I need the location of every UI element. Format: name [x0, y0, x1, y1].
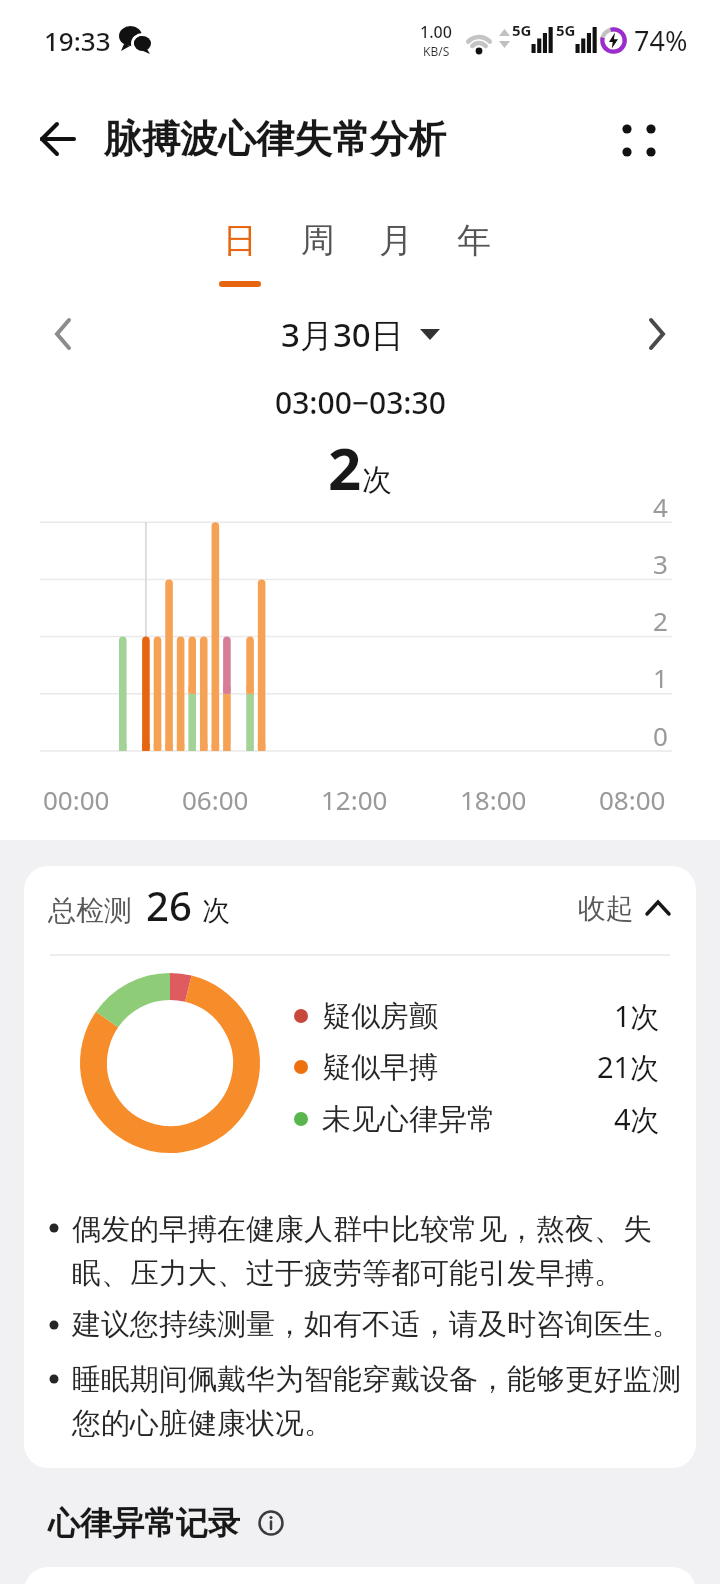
staticText: 5G: [512, 20, 532, 40]
staticText: 3月30日: [281, 312, 404, 357]
staticText: 4: [653, 489, 668, 523]
button[interactable]: [48, 314, 80, 354]
staticText: 08:00: [599, 782, 666, 816]
staticText: 1次: [614, 996, 660, 1036]
staticText: 次: [362, 461, 392, 499]
staticText: 06:00: [182, 782, 249, 816]
staticText: 00:00: [43, 782, 110, 816]
staticText: 26: [146, 878, 192, 932]
staticText: 18:00: [460, 782, 527, 816]
staticText: 5G: [556, 20, 576, 40]
staticText: 2: [328, 428, 362, 500]
staticText: 疑似房颤: [322, 998, 438, 1035]
button[interactable]: [616, 118, 662, 162]
staticText: 心律异常记录: [48, 1503, 240, 1543]
button[interactable]: 收起: [578, 888, 670, 928]
button[interactable]: 周: [279, 212, 357, 268]
button[interactable]: [640, 314, 672, 354]
staticText: 总检测: [48, 893, 132, 928]
staticText: 月: [379, 219, 413, 262]
staticText: 收起: [578, 891, 634, 926]
staticText: 日: [223, 219, 257, 262]
staticText: 03:00−03:30: [275, 382, 446, 423]
staticText: 周: [301, 219, 335, 262]
staticText: 建议您持续测量，如有不适，请及时咨询医生。: [72, 1306, 681, 1343]
button[interactable]: 年: [435, 212, 513, 268]
button[interactable]: 日: [201, 212, 279, 268]
staticText: 睡眠期间佩戴华为智能穿戴设备，能够更好监测 您的心脏健康状况。: [72, 1361, 681, 1441]
staticText: KB/S: [423, 43, 450, 59]
button[interactable]: [38, 120, 78, 158]
staticText: 次: [202, 893, 230, 928]
staticText: 19:33: [44, 23, 111, 58]
staticText: 4次: [614, 1099, 660, 1139]
button[interactable]: [258, 1510, 284, 1536]
staticText: 1: [653, 660, 668, 694]
staticText: 21次: [597, 1047, 660, 1087]
staticText: 74%: [634, 22, 688, 58]
staticText: 偶发的早搏在健康人群中比较常见，熬夜、失 眠、压力大、过于疲劳等都可能引发早搏。: [72, 1211, 652, 1291]
staticText: 3: [653, 546, 668, 580]
staticText: 年: [457, 219, 491, 262]
staticText: 未见心律异常: [322, 1101, 496, 1138]
button[interactable]: 3月30日: [0, 310, 720, 358]
staticText: 12:00: [321, 782, 388, 816]
staticText: 2: [653, 603, 668, 637]
staticText: 疑似早搏: [322, 1049, 438, 1086]
staticText: 脉搏波心律失常分析: [104, 115, 446, 163]
staticText: 1.00: [420, 21, 452, 43]
staticText: 0: [653, 718, 668, 752]
button[interactable]: 月: [357, 212, 435, 268]
